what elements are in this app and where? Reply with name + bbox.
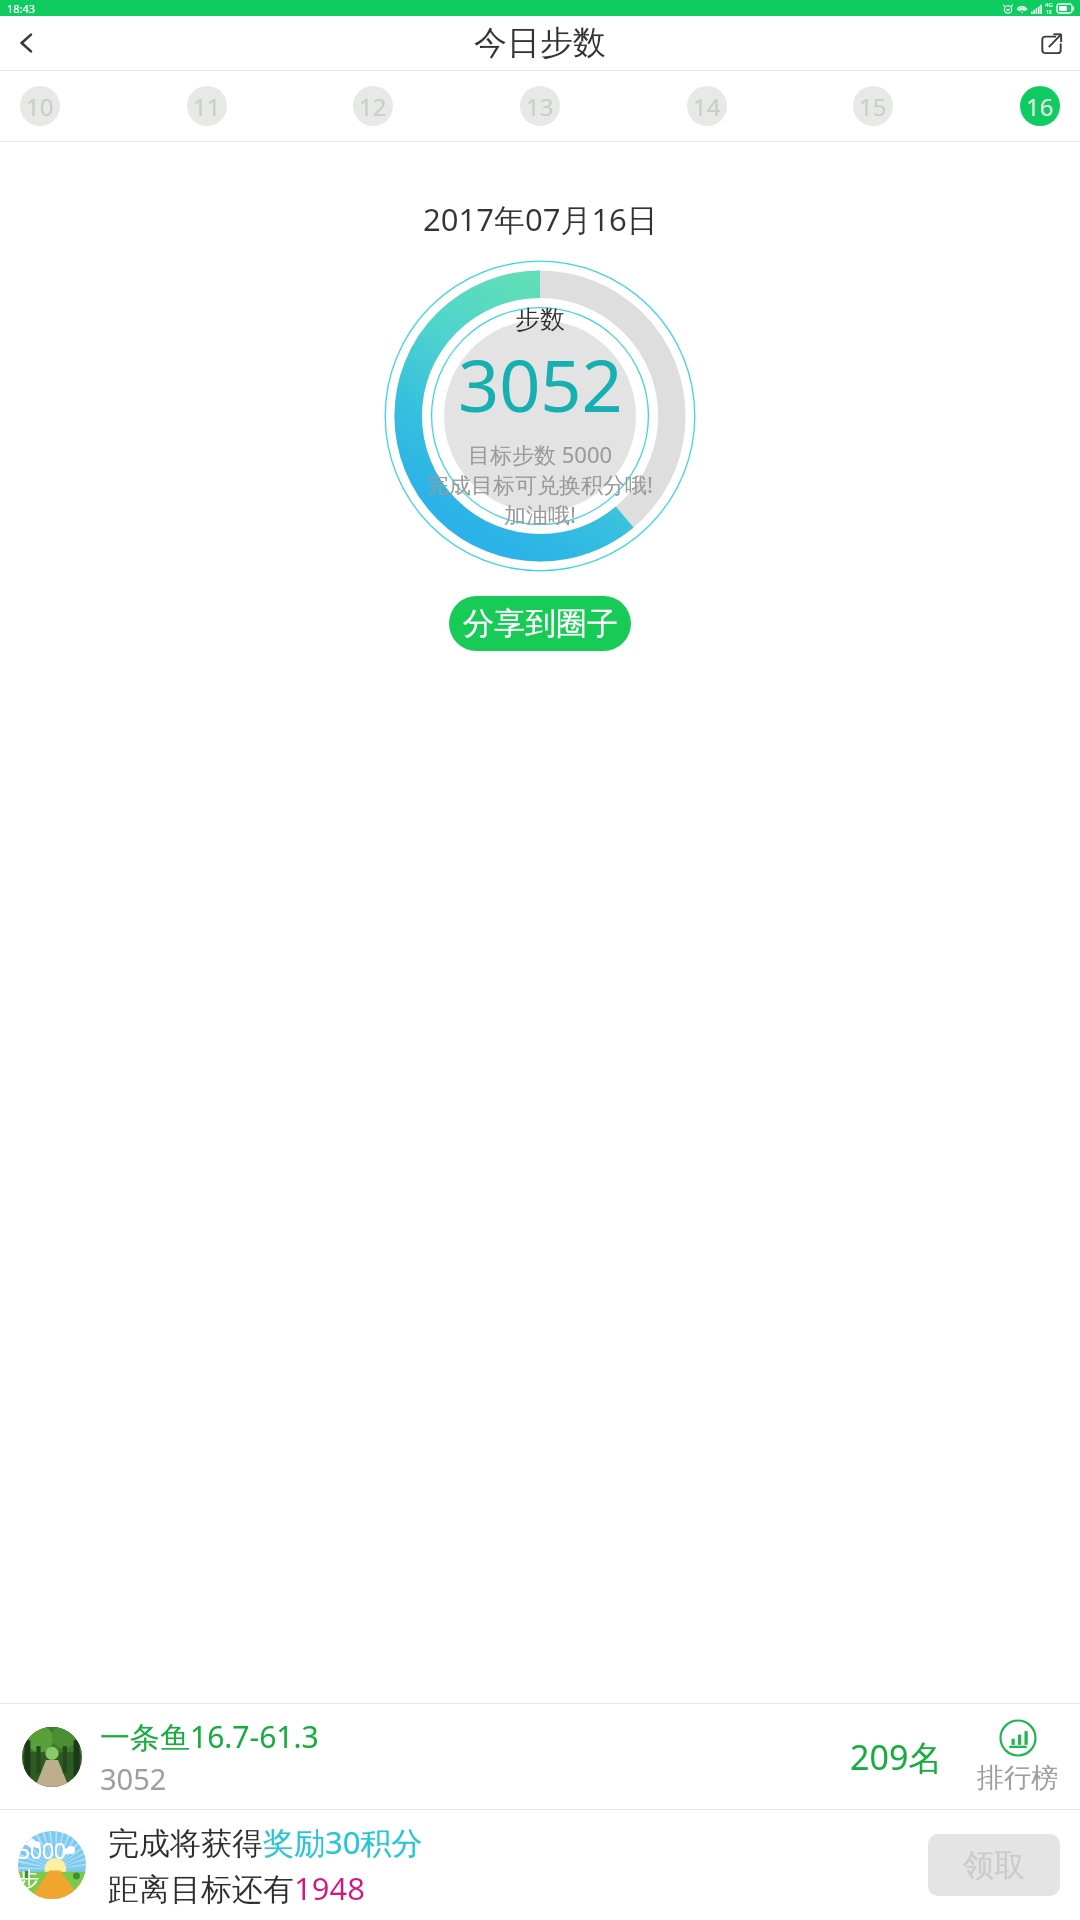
staticText: 距离目标还有1948 xyxy=(108,1867,365,1909)
staticText: 步数 xyxy=(515,304,565,335)
staticText: 10 xyxy=(26,90,54,123)
staticText: 4G xyxy=(1045,1,1053,9)
staticText: 领取 xyxy=(963,1846,1025,1885)
button[interactable]: 排行榜 xyxy=(977,1719,1058,1795)
button[interactable]: 11 xyxy=(187,86,227,126)
button[interactable]: 15 xyxy=(853,86,893,126)
staticText: 13 xyxy=(526,90,554,123)
staticText: 完成将获得奖励30积分 xyxy=(108,1821,423,1863)
staticText: 16 xyxy=(1026,90,1054,123)
staticText: 3052 xyxy=(458,335,623,433)
staticText: 目标步数 5000 xyxy=(468,439,613,469)
button[interactable]: 分享 xyxy=(1029,21,1073,65)
staticText: 15 xyxy=(859,90,887,123)
staticText: 排行榜 xyxy=(977,1761,1058,1795)
staticText: 209名 xyxy=(850,1734,943,1780)
button[interactable]: 13 xyxy=(520,86,560,126)
button[interactable]: 领取 xyxy=(928,1834,1060,1896)
button[interactable]: 14 xyxy=(687,86,727,126)
button[interactable]: 一条鱼16.7-61.3 xyxy=(0,1704,1080,1809)
button[interactable]: 返回 xyxy=(5,21,49,65)
staticText: 分享到圈子 xyxy=(463,604,618,643)
staticText: 加油哦! xyxy=(504,499,576,529)
staticText: 2017年07月16日 xyxy=(423,198,658,240)
staticText: 完成目标可兑换积分哦! xyxy=(427,469,653,499)
staticText: 11 xyxy=(193,90,221,123)
staticText: 14 xyxy=(693,90,721,123)
staticText: 1X xyxy=(1046,9,1052,16)
staticText: 3052 xyxy=(100,1759,167,1798)
staticText: 12 xyxy=(359,90,387,123)
staticText: 今日步数 xyxy=(474,22,606,64)
staticText: 5000步 xyxy=(18,1837,86,1893)
button[interactable]: 10 xyxy=(20,86,60,126)
staticText: 一条鱼16.7-61.3 xyxy=(100,1716,319,1757)
staticText: 18:43 xyxy=(7,1,36,16)
button[interactable]: 16 xyxy=(1020,86,1060,126)
button[interactable]: 12 xyxy=(353,86,393,126)
button[interactable]: 分享到圈子 xyxy=(449,596,631,651)
